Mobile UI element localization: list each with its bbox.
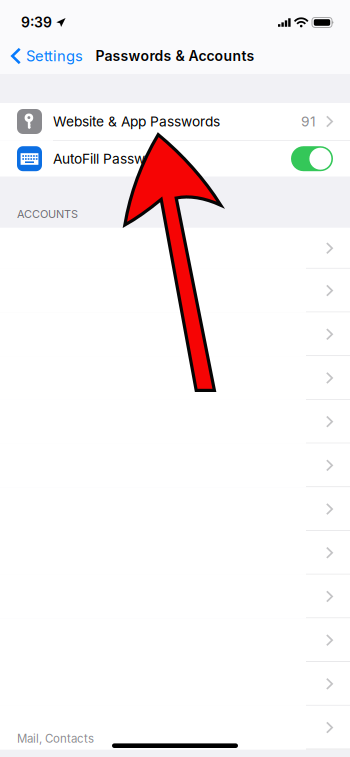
staticText: Settings	[26, 47, 83, 65]
staticText: Passwords & Accounts	[95, 47, 254, 64]
button[interactable]: Website & App Passwords	[0, 103, 350, 140]
staticText: AutoFill Passwords	[53, 150, 173, 167]
button[interactable]: Account	[0, 269, 350, 312]
staticText: 9:39	[21, 14, 52, 31]
staticText: ACCOUNTS	[17, 207, 78, 221]
button[interactable]: Account	[0, 228, 350, 269]
button[interactable]: Account, Mail, Contacts	[0, 706, 350, 749]
button[interactable]: Settings	[0, 38, 91, 74]
button[interactable]: AutoFill Passwords	[291, 146, 333, 171]
staticText: Website & App Passwords	[53, 113, 220, 130]
staticText: Mail, Contacts	[17, 731, 94, 745]
staticText: 91	[301, 113, 316, 130]
button[interactable]: Account	[0, 312, 350, 356]
button[interactable]: Account	[0, 356, 350, 400]
